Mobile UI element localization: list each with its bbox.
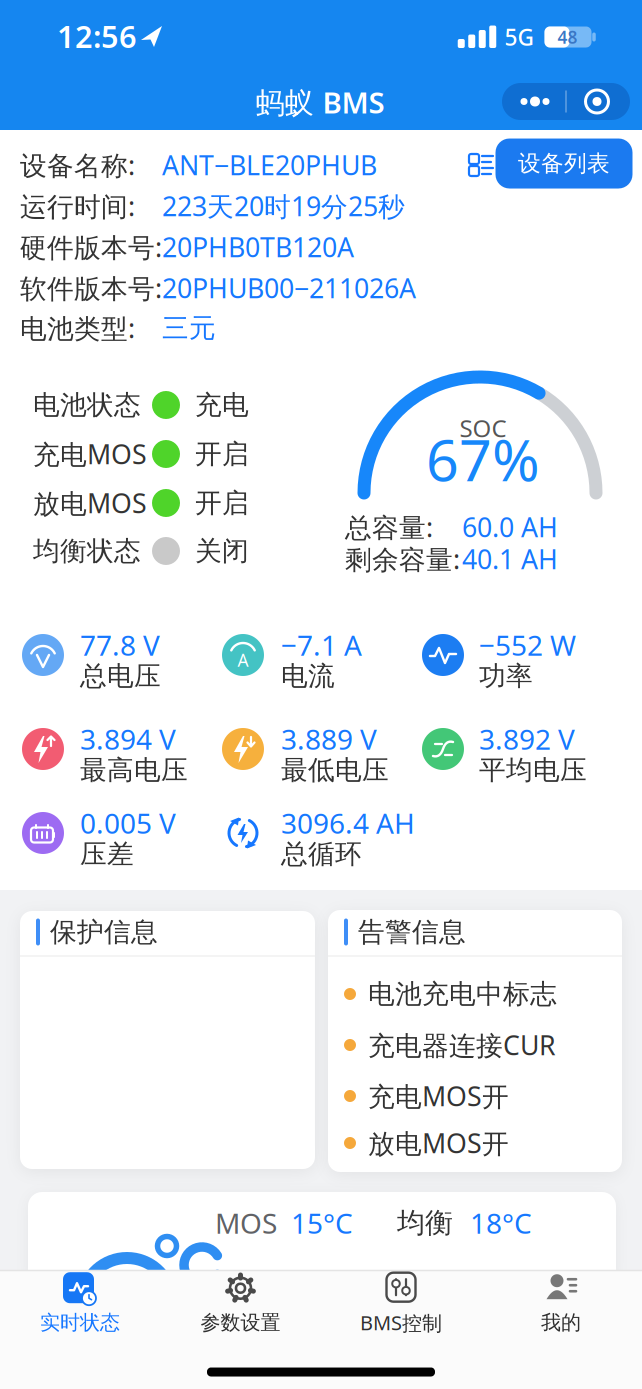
staticText: 均衡	[397, 1206, 453, 1240]
staticText: 硬件版本号:	[20, 229, 162, 265]
button[interactable]: 我的	[491, 1265, 631, 1341]
button[interactable]: 设备列表	[495, 138, 632, 188]
staticText: 电流	[281, 660, 335, 692]
staticText: 告警信息	[358, 916, 466, 948]
button[interactable]: 更多	[502, 83, 630, 120]
button[interactable]: 参数设置	[170, 1265, 310, 1341]
staticText: 充电MOS开	[368, 1078, 509, 1114]
staticText: 开启	[195, 438, 249, 470]
staticText: 3.892 V	[479, 720, 575, 758]
staticText: 保护信息	[50, 916, 158, 948]
staticText: MOS	[215, 1204, 277, 1242]
staticText: 总电压	[80, 660, 161, 692]
staticText: 77.8 V	[80, 626, 160, 664]
staticText: 0.005 V	[80, 804, 176, 842]
staticText: 12:56	[57, 16, 137, 56]
staticText: 关闭	[195, 535, 249, 567]
button[interactable]: 实时状态	[10, 1265, 150, 1341]
button[interactable]: BMS控制	[331, 1265, 471, 1341]
staticText: 20PHUB00−211026A	[162, 270, 416, 306]
staticText: 功率	[479, 660, 533, 692]
staticText: SOC	[459, 412, 506, 444]
staticText: 压差	[80, 838, 134, 870]
staticText: −7.1 A	[281, 626, 362, 664]
staticText: 剩余容量:	[345, 541, 460, 577]
staticText: 三元	[162, 312, 216, 344]
staticText: 总容量:	[345, 509, 433, 545]
staticText: 最低电压	[281, 754, 389, 786]
staticText: 最高电压	[80, 754, 188, 786]
staticText: 15°C	[291, 1204, 353, 1242]
staticText: 电池状态	[33, 389, 141, 421]
staticText: 开启	[195, 487, 249, 519]
staticText: 3096.4 AH	[281, 804, 415, 842]
staticText: 设备名称:	[20, 147, 135, 183]
staticText: 我的	[541, 1310, 581, 1335]
staticText: 软件版本号:	[20, 270, 162, 306]
staticText: 设备列表	[518, 150, 610, 177]
staticText: 18°C	[470, 1204, 532, 1242]
staticText: 电池类型:	[20, 310, 135, 346]
staticText: 运行时间:	[20, 188, 135, 224]
staticText: 充电MOS	[33, 436, 147, 472]
staticText: A	[237, 648, 248, 671]
staticText: 充电器连接CUR	[368, 1027, 556, 1063]
staticText: 5G	[504, 22, 533, 52]
staticText: 总循环	[281, 838, 362, 870]
staticText: BMS控制	[360, 1309, 442, 1336]
staticText: −552 W	[479, 626, 576, 664]
staticText: 20PHB0TB120A	[162, 229, 354, 265]
staticText: 3.889 V	[281, 720, 377, 758]
staticText: 223天20时19分25秒	[162, 188, 405, 224]
staticText: 放电MOS开	[368, 1125, 509, 1161]
staticText: 电池充电中标志	[368, 978, 557, 1010]
staticText: 67%	[426, 421, 540, 497]
staticText: 蚂蚁 BMS	[255, 82, 384, 121]
staticText: 40.1 AH	[462, 541, 558, 577]
staticText: 充电	[195, 389, 249, 421]
staticText: 48	[557, 25, 577, 48]
staticText: ANT−BLE20PHUB	[162, 147, 377, 183]
staticText: 参数设置	[200, 1310, 280, 1335]
staticText: 3.894 V	[80, 720, 176, 758]
staticText: 60.0 AH	[462, 509, 558, 545]
staticText: 均衡状态	[33, 535, 141, 567]
staticText: 放电MOS	[33, 485, 147, 521]
staticText: 平均电压	[479, 754, 587, 786]
staticText: 实时状态	[40, 1310, 120, 1335]
